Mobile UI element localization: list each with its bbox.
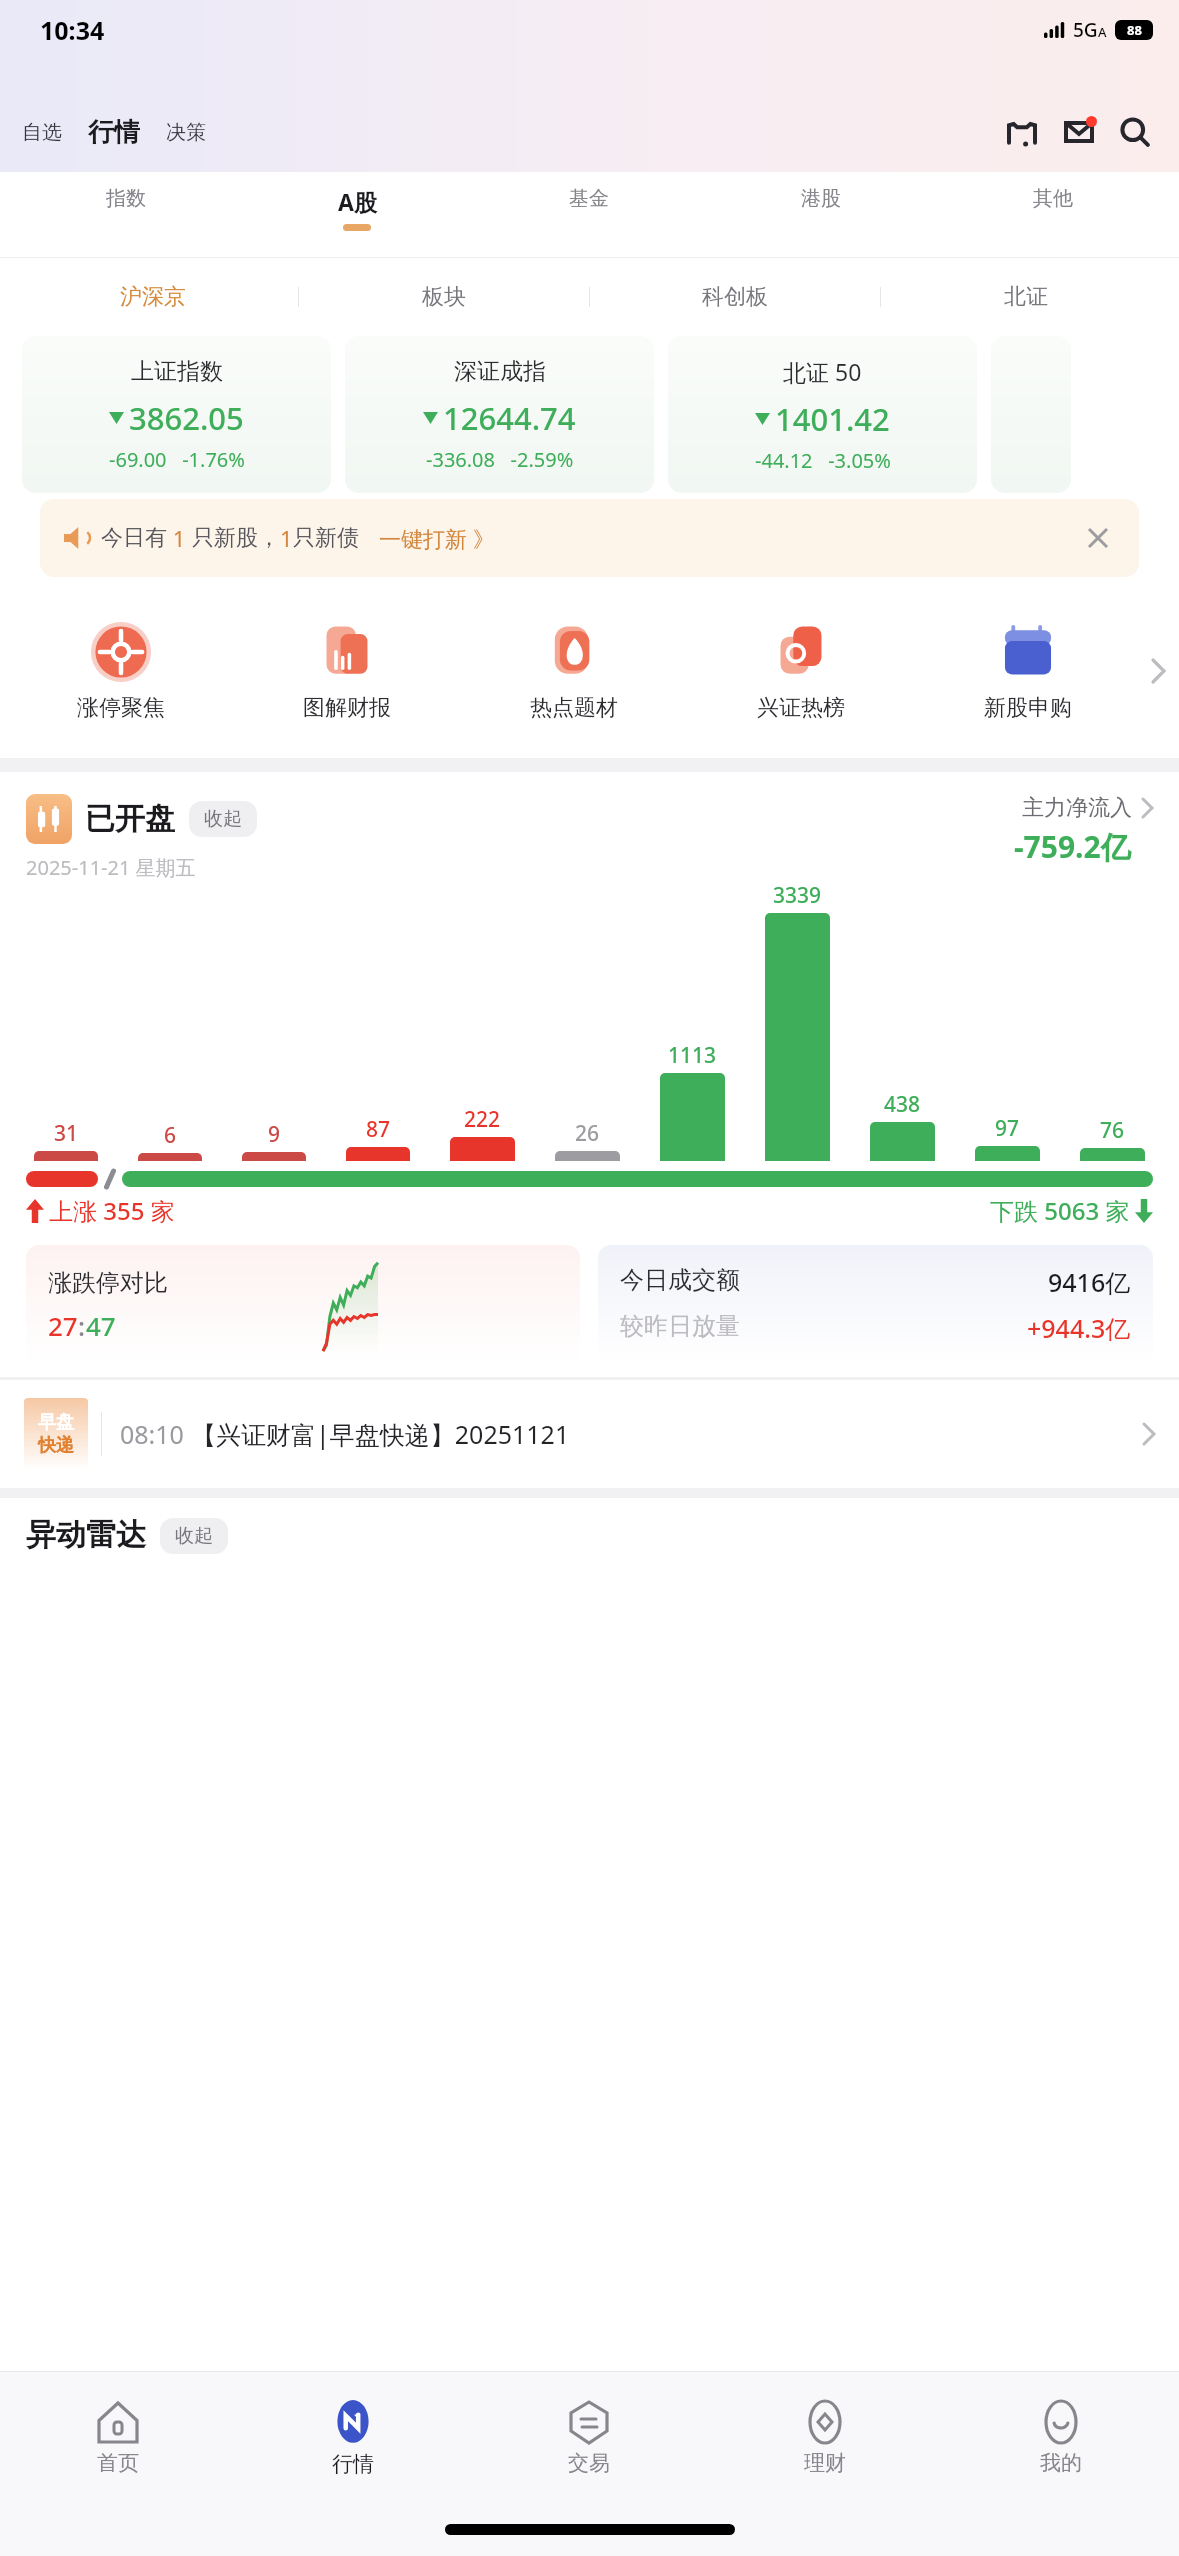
button[interactable]: 今日有 [40, 499, 1139, 577]
button[interactable]: 收起 [160, 1518, 228, 1554]
button[interactable]: 沪深京 [8, 258, 298, 336]
staticText: 08:10 [120, 1417, 191, 1451]
button[interactable]: 早盘 [0, 1380, 1179, 1488]
staticText: 兴证热榜 [757, 694, 845, 722]
staticText: 涨跌停对比 [48, 1268, 168, 1298]
staticText: 图解财报 [303, 694, 391, 722]
staticText: 9416亿 [1048, 1265, 1131, 1299]
staticText: 47 [86, 1308, 116, 1343]
staticText: 今日有 [101, 524, 167, 552]
staticText: 97 [995, 1114, 1020, 1143]
button[interactable]: 关闭 [1081, 521, 1115, 555]
staticText: 快递 [38, 1434, 74, 1457]
staticText: 只新股， [192, 524, 280, 552]
button[interactable]: 港股 [705, 172, 937, 221]
staticText: 只新债 [293, 524, 359, 552]
button[interactable]: 搜索 [1113, 110, 1157, 154]
staticText: 首页 [97, 2450, 139, 2476]
staticText: 1 [167, 523, 192, 553]
button[interactable]: 行情 [88, 116, 140, 149]
staticText: 1401.42 [775, 398, 890, 440]
button[interactable]: 今日成交额 [598, 1245, 1153, 1365]
button[interactable]: 消息 [1057, 110, 1101, 154]
staticText: 12644.74 [443, 397, 576, 439]
staticText: 9 [268, 1120, 281, 1149]
button[interactable]: 更多 [1141, 583, 1175, 758]
button[interactable]: 涨跌停对比 [26, 1245, 580, 1365]
button[interactable]: 自选 [22, 120, 62, 145]
button[interactable]: 新股申购 [914, 620, 1141, 722]
staticText: A股 [338, 186, 377, 217]
button[interactable]: 首页 [0, 2372, 235, 2502]
staticText: -69.00 -1.76% [109, 446, 245, 473]
button[interactable]: 基金 [473, 172, 705, 221]
button[interactable]: 北证 [880, 258, 1171, 336]
staticText: 我的 [1040, 2450, 1082, 2476]
button[interactable]: 理财 [707, 2372, 943, 2502]
staticText: 3862.05 [129, 397, 244, 439]
staticText: 深证成指 [454, 357, 546, 386]
button[interactable]: 我的 [943, 2372, 1179, 2502]
staticText: 1 [280, 523, 293, 553]
staticText: 3339 [773, 881, 822, 910]
button[interactable]: 指数 [10, 172, 241, 221]
staticText: 早盘 [38, 1411, 74, 1434]
staticText: 6 [164, 1121, 177, 1150]
staticText: 行情 [332, 2451, 374, 2477]
button[interactable]: 北证 50 [668, 336, 977, 493]
button[interactable]: 深证成指 [345, 336, 654, 493]
staticText: 理财 [804, 2450, 846, 2476]
staticText: 涨停聚焦 [77, 694, 165, 722]
staticText: 基金 [569, 186, 609, 211]
button[interactable]: 图解财报 [234, 620, 460, 722]
staticText: 科创板 [702, 283, 768, 311]
staticText: A [1098, 23, 1107, 41]
button[interactable]: 行情 [235, 2372, 471, 2502]
staticText: 26 [575, 1119, 600, 1148]
staticText: 北证 [1004, 283, 1048, 311]
staticText: 一键打新 》 [379, 523, 495, 553]
staticText: 2025-11-21 星期五 [26, 854, 196, 881]
button[interactable]: 客服 [1001, 111, 1043, 153]
button[interactable]: 热点题材 [460, 620, 687, 722]
button[interactable]: A股 [241, 172, 473, 231]
staticText: 76 [1100, 1116, 1125, 1145]
staticText: 31 [54, 1119, 79, 1148]
staticText: 北证 50 [783, 356, 862, 387]
staticText: -336.08 -2.59% [426, 446, 574, 473]
staticText: 1113 [668, 1041, 717, 1070]
staticText: 88 [1127, 21, 1142, 39]
staticText: 已开盘 [85, 800, 175, 838]
button[interactable]: 收起 [189, 801, 257, 837]
staticText: 【兴证财富|早盘快递】20251121 [191, 1417, 570, 1451]
staticText: 438 [884, 1090, 921, 1119]
button[interactable]: 上证指数 [22, 336, 331, 493]
button[interactable]: 交易 [471, 2372, 707, 2502]
button[interactable]: 科创板 [589, 258, 880, 336]
button[interactable]: 决策 [166, 120, 206, 145]
staticText: 交易 [568, 2450, 610, 2476]
button[interactable]: 其他 [937, 172, 1169, 221]
staticText: 热点题材 [530, 694, 618, 722]
button[interactable]: 涨停聚焦 [8, 620, 234, 722]
staticText: 87 [366, 1115, 391, 1144]
staticText: 上证指数 [131, 357, 223, 386]
staticText: -759.2亿 [1014, 826, 1131, 867]
staticText: 沪深京 [120, 283, 186, 311]
button[interactable]: 主力净流入 [1014, 794, 1153, 867]
button[interactable]: 板块 [298, 258, 589, 336]
staticText: 异动雷达 [26, 1516, 146, 1554]
staticText: 上涨 355 家 [49, 1194, 175, 1227]
staticText: -44.12 -3.05% [755, 447, 891, 474]
button[interactable]: 兴证热榜 [687, 620, 914, 722]
staticText: 新股申购 [984, 694, 1072, 722]
